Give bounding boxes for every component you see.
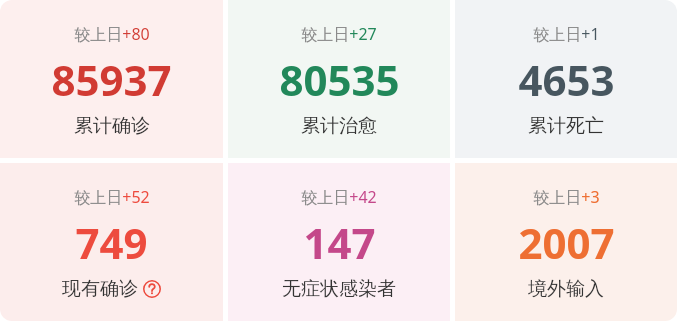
staticText: 现有确诊	[62, 277, 138, 301]
button[interactable]: 较上日+27	[228, 0, 450, 158]
staticText: 累计确诊	[74, 114, 150, 138]
button[interactable]: 较上日+3	[455, 163, 677, 321]
staticText: 累计死亡	[528, 114, 604, 138]
staticText: 147	[303, 214, 376, 271]
staticText: 较上日+1	[533, 23, 600, 45]
staticText: 2007	[518, 214, 615, 271]
staticText: 较上日+42	[301, 186, 377, 208]
staticText: 4653	[518, 51, 615, 108]
staticText: 较上日+3	[533, 186, 600, 208]
staticText: 较上日+80	[74, 23, 150, 45]
button[interactable]: 较上日+80	[0, 0, 223, 158]
staticText: 较上日+27	[301, 23, 377, 45]
staticText: 80535	[279, 51, 400, 108]
button[interactable]: 说明	[143, 280, 161, 298]
staticText: 无症状感染者	[282, 277, 396, 301]
button[interactable]: 较上日+1	[455, 0, 677, 158]
staticText: 较上日+52	[74, 186, 150, 208]
button[interactable]: 较上日+52	[0, 163, 223, 321]
button[interactable]: 较上日+42	[228, 163, 450, 321]
staticText: 累计治愈	[301, 114, 377, 138]
staticText: 749	[75, 214, 148, 271]
staticText: 85937	[51, 51, 172, 108]
staticText: 境外输入	[528, 277, 604, 301]
